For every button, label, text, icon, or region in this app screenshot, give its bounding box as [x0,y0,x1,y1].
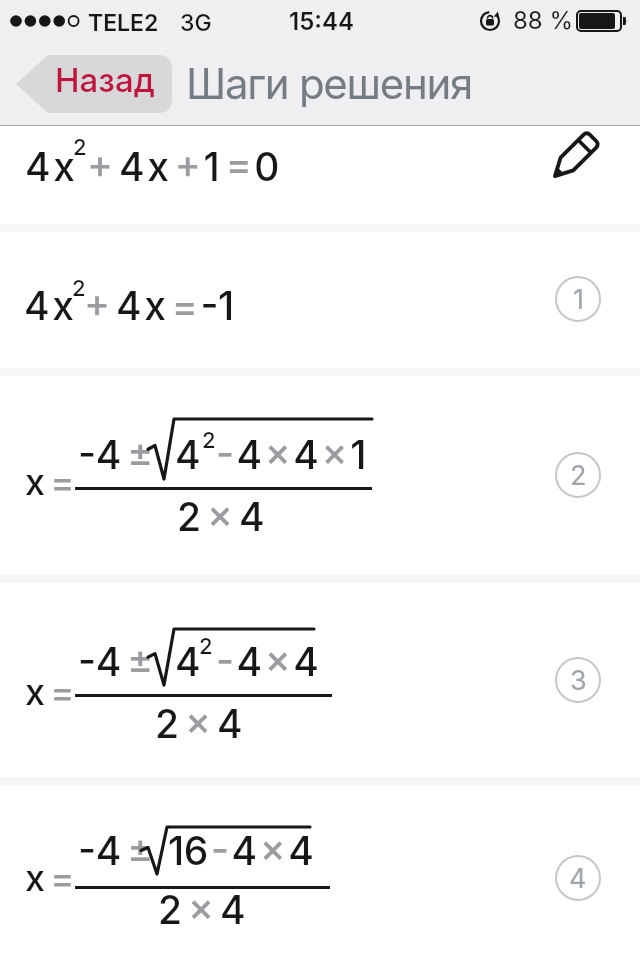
staticText: + 4 x = -1 [84,282,234,329]
button[interactable]: 4 x [0,232,640,368]
staticText: 2 [202,427,216,454]
staticText: 15:44 [289,7,354,36]
staticText: 16 - 4 × 4 [168,827,314,874]
staticText: x = [25,460,75,504]
staticText: 88 % [513,6,574,35]
staticText: TELE2 [88,9,159,37]
button[interactable]: x = [0,583,640,777]
staticText: x = [25,670,75,714]
staticText: 4 - 4 × 4 [175,638,319,685]
staticText: -4 ± [78,431,153,478]
staticText: -4 ± [78,827,153,874]
staticText: -4 ± [78,638,153,685]
staticText: 4 x [24,282,74,329]
button[interactable] [545,128,603,186]
button[interactable]: Назад [14,55,172,113]
staticText: 1 [573,283,584,316]
staticText: 2 [199,633,213,660]
button[interactable]: x = [0,376,640,575]
button[interactable]: 1 [555,276,601,322]
staticText: 2 × 4 [177,493,265,540]
staticText: x = [25,856,75,900]
staticText: 4 - 4 × 4 × 1 [175,431,366,478]
button[interactable]: 3 [555,657,601,703]
staticText: 2 × 4 [155,700,243,747]
staticText: Шаги решения [186,58,472,109]
staticText: 2 [570,459,587,492]
staticText: 2 [72,275,86,302]
staticText: 4 [569,862,587,895]
button[interactable]: x = [0,785,640,960]
staticText: 4 x [25,143,75,190]
button[interactable]: 4 x [0,126,640,224]
staticText: 3 [570,664,587,697]
button[interactable]: 4 [555,855,601,901]
button[interactable]: 2 [555,452,601,498]
staticText: 2 [73,134,87,161]
staticText: 3G [180,9,212,37]
staticText: 2 × 4 [158,886,246,933]
staticText: Назад [55,60,155,100]
staticText: + 4 x + 1 = 0 [87,143,280,190]
